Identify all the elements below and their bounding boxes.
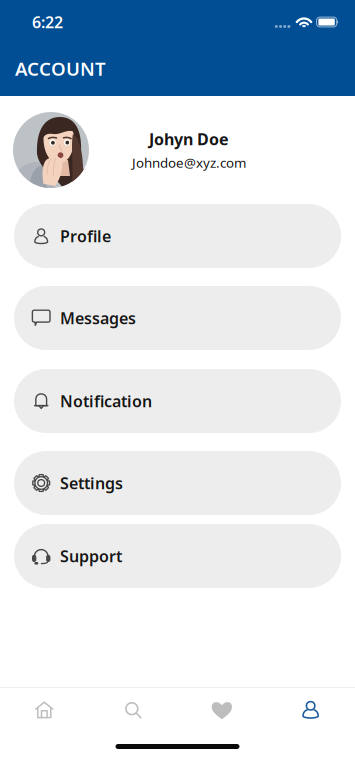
button[interactable]: Search [89, 688, 178, 732]
staticText: Messages [60, 307, 136, 329]
button[interactable]: Home [0, 688, 89, 732]
staticText: Settings [60, 472, 123, 494]
button[interactable]: Profile [14, 204, 341, 268]
button[interactable]: Notification [14, 369, 341, 433]
button[interactable]: Settings [14, 451, 341, 515]
staticText: 6:22 [32, 11, 63, 33]
staticText: Johyn Doe [149, 128, 229, 150]
staticText: Profile [60, 225, 111, 247]
button[interactable]: Support [14, 524, 341, 588]
staticText: ACCOUNT [15, 56, 106, 81]
staticText: Notification [60, 390, 152, 412]
button[interactable]: Account [266, 688, 355, 732]
staticText: Support [60, 545, 122, 567]
button[interactable]: Favorites [177, 688, 266, 732]
staticText: Johndoe@xyz.com [132, 154, 246, 171]
button[interactable]: Messages [14, 286, 341, 350]
